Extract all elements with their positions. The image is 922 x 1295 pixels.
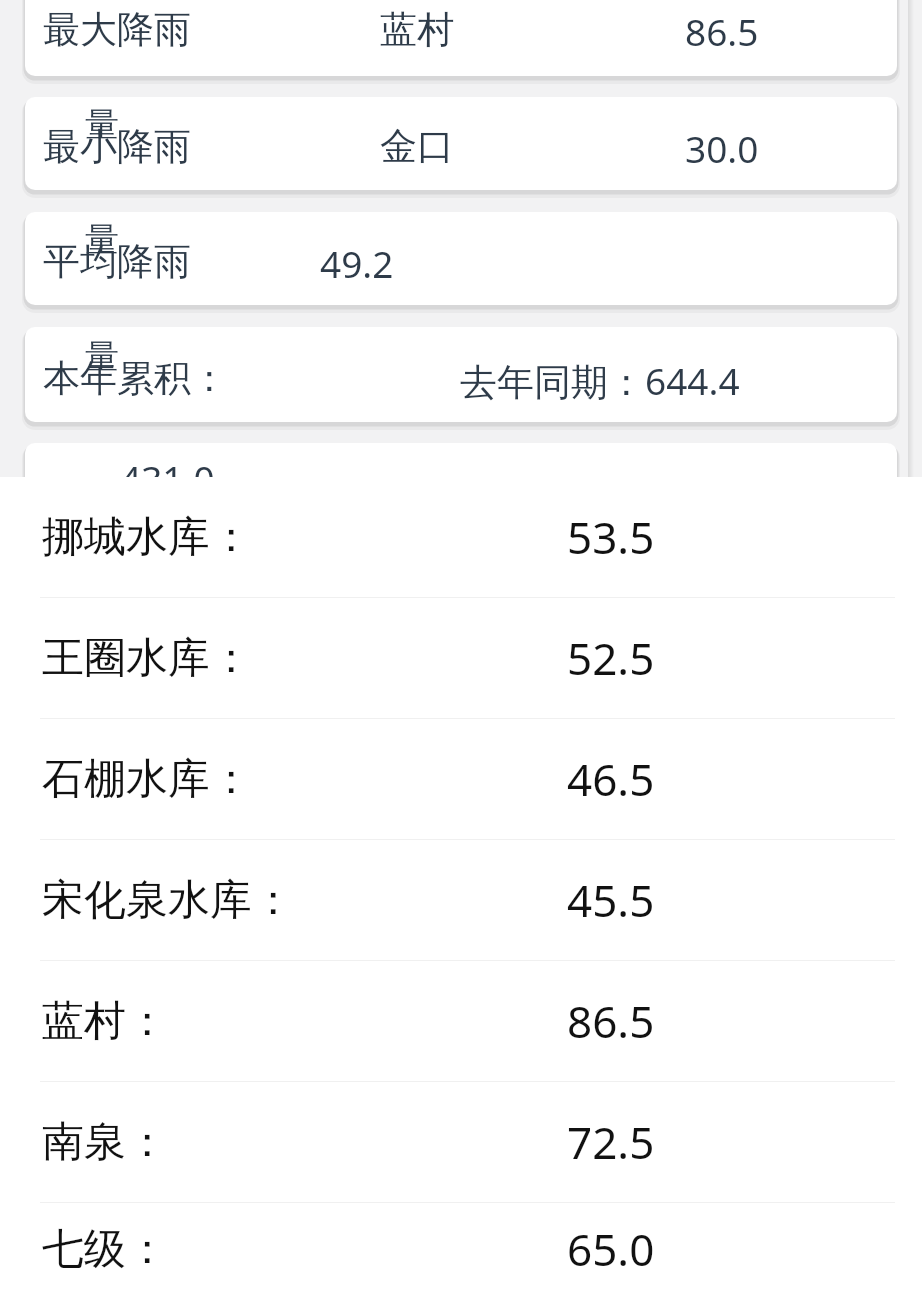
- staticText: 金口: [380, 123, 454, 170]
- staticText: 蓝村: [380, 6, 454, 53]
- staticText: 挪城水库：: [42, 511, 252, 564]
- staticText: 52.5: [567, 628, 655, 688]
- staticText: 45.5: [567, 870, 655, 930]
- button[interactable]: 王圈水库：: [0, 598, 922, 718]
- staticText: 本年累积：: [43, 355, 228, 402]
- button[interactable]: 七级：: [0, 1203, 922, 1295]
- staticText: 431.0: [120, 453, 215, 477]
- staticText: 49.2: [320, 238, 394, 288]
- staticText: 量: [85, 103, 119, 146]
- staticText: 量: [85, 335, 119, 378]
- staticText: 53.5: [567, 507, 655, 567]
- staticText: 最大降雨: [43, 6, 191, 53]
- button[interactable]: 431.0: [25, 443, 897, 477]
- button[interactable]: 本年累积：: [25, 327, 897, 422]
- staticText: 七级：: [42, 1223, 168, 1276]
- staticText: 65.0: [567, 1219, 655, 1279]
- staticText: 46.5: [567, 749, 655, 809]
- staticText: 南泉：: [42, 1116, 168, 1169]
- staticText: 宋化泉水库：: [42, 874, 294, 927]
- staticText: 86.5: [567, 991, 655, 1051]
- button[interactable]: 蓝村：: [0, 961, 922, 1081]
- button[interactable]: 挪城水库：: [0, 477, 922, 597]
- button[interactable]: 最大降雨: [25, 0, 897, 76]
- staticText: 72.5: [567, 1112, 655, 1172]
- button[interactable]: 最小降雨: [25, 97, 897, 190]
- staticText: 去年同期：644.4: [460, 355, 740, 406]
- button[interactable]: 南泉：: [0, 1082, 922, 1202]
- staticText: 王圈水库：: [42, 632, 252, 685]
- staticText: 石棚水库：: [42, 753, 252, 806]
- staticText: 量: [85, 218, 119, 261]
- button[interactable]: 石棚水库：: [0, 719, 922, 839]
- staticText: 蓝村：: [42, 995, 168, 1048]
- staticText: 86.5: [685, 6, 759, 56]
- staticText: 平均降雨: [43, 238, 191, 285]
- button[interactable]: 宋化泉水库：: [0, 840, 922, 960]
- staticText: 最小降雨: [43, 123, 191, 170]
- button[interactable]: 平均降雨: [25, 212, 897, 305]
- staticText: 30.0: [685, 123, 759, 173]
